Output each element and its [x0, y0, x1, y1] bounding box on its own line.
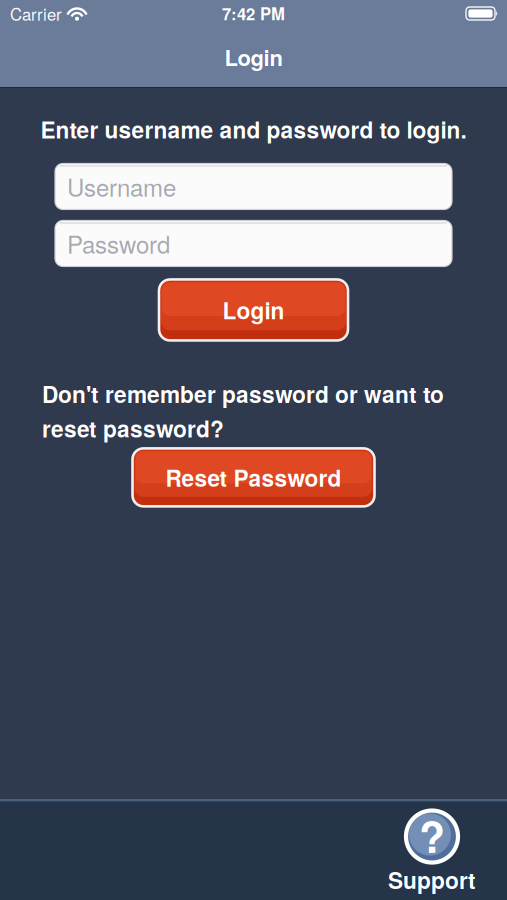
staticText: Enter username and password to login. [40, 113, 466, 145]
staticText: Carrier [10, 2, 62, 25]
button[interactable]: Support [388, 809, 476, 896]
button[interactable]: Login [159, 279, 348, 340]
staticText: Login [224, 41, 282, 73]
staticText: Don't remember password or want to reset… [42, 377, 444, 444]
staticText: Support [388, 863, 476, 896]
staticText: Login [222, 294, 284, 326]
button[interactable]: Password [55, 220, 452, 266]
button[interactable]: Username [55, 163, 452, 209]
staticText: 7:42 PM [222, 2, 285, 25]
staticText: Username [67, 169, 176, 204]
button[interactable]: Reset Password [132, 448, 374, 506]
staticText: Password [67, 226, 170, 261]
staticText: ? [419, 805, 445, 866]
staticText: Reset Password [165, 461, 341, 494]
